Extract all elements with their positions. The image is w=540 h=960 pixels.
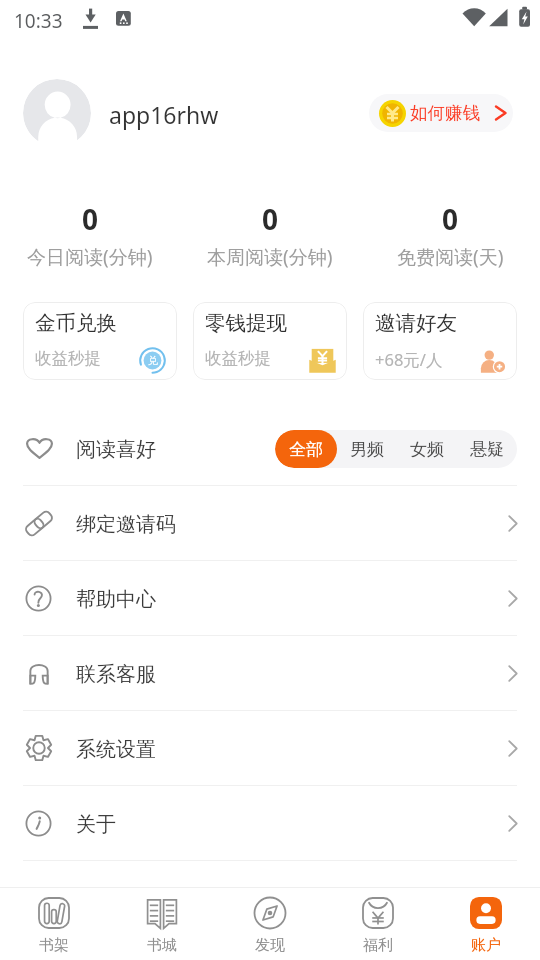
staticText: 发现 (255, 936, 285, 955)
staticText: 女频 (410, 439, 444, 460)
button[interactable]: 0 (180, 200, 360, 270)
staticText: 帮助中心 (76, 587, 156, 612)
button[interactable]: 邀请好友 (363, 302, 517, 380)
button[interactable]: 悬疑 (457, 430, 517, 468)
staticText: 账户 (471, 936, 501, 955)
staticText: 书架 (39, 936, 69, 955)
button[interactable]: 0 (360, 200, 540, 270)
button[interactable]: 全部 (275, 430, 337, 468)
staticText: 10:33 (14, 8, 63, 34)
staticText: +68元/人 (375, 348, 443, 371)
staticText: 邀请好友 (375, 310, 457, 336)
staticText: 免费阅读(天) (397, 244, 504, 270)
button[interactable]: 如何赚钱 (369, 94, 513, 132)
staticText: 零钱提现 (205, 310, 287, 336)
staticText: 0 (262, 200, 279, 238)
staticText: 联系客服 (76, 662, 156, 687)
button[interactable]: 发现 (216, 888, 324, 960)
button[interactable]: User avatar (23, 79, 91, 147)
staticText: 0 (442, 200, 459, 238)
staticText: 悬疑 (470, 439, 504, 460)
button[interactable]: 联系客服 (0, 636, 540, 711)
button[interactable]: 书架 (0, 888, 108, 960)
staticText: 福利 (363, 936, 393, 955)
button[interactable]: 0 (0, 200, 180, 270)
staticText: 金币兑换 (35, 310, 117, 336)
staticText: app16rhw (109, 99, 219, 130)
staticText: 本周阅读(分钟) (207, 244, 333, 270)
button[interactable]: 关于 (0, 786, 540, 861)
staticText: 兑 (148, 354, 158, 367)
staticText: 全部 (289, 439, 323, 460)
staticText: 系统设置 (76, 737, 156, 762)
staticText: 收益秒提 (35, 348, 101, 369)
staticText: 关于 (76, 812, 116, 837)
staticText: 今日阅读(分钟) (27, 244, 153, 270)
button[interactable]: 系统设置 (0, 711, 540, 786)
staticText: 绑定邀请码 (76, 512, 176, 537)
button[interactable]: 绑定邀请码 (0, 486, 540, 561)
staticText: 收益秒提 (205, 348, 271, 369)
staticText: 书城 (147, 936, 177, 955)
staticText: 男频 (350, 439, 384, 460)
button[interactable]: 书城 (108, 888, 216, 960)
staticText: 阅读喜好 (76, 437, 156, 462)
button[interactable]: 福利 (324, 888, 432, 960)
button[interactable]: 男频 (337, 430, 397, 468)
staticText: 如何赚钱 (410, 102, 480, 124)
button[interactable]: 账户 (432, 888, 540, 960)
staticText: 0 (82, 200, 99, 238)
button[interactable]: 帮助中心 (0, 561, 540, 636)
button[interactable]: 金币兑换 (23, 302, 177, 380)
button[interactable]: 女频 (397, 430, 457, 468)
button[interactable]: 零钱提现 (193, 302, 347, 380)
